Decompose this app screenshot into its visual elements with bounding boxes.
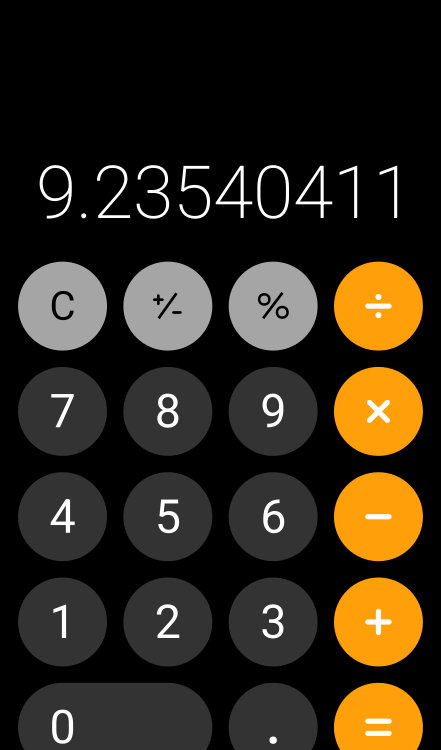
staticText: 8 xyxy=(155,384,181,439)
button[interactable]: 9 xyxy=(229,367,318,456)
button[interactable]: Equals xyxy=(334,683,423,750)
button[interactable]: 8 xyxy=(123,367,212,456)
button[interactable]: 1 xyxy=(18,577,107,666)
button[interactable]: C xyxy=(18,262,107,351)
staticText: 3 xyxy=(260,595,286,649)
staticText: 1 xyxy=(50,595,76,649)
staticText: 0 xyxy=(49,700,75,750)
staticText: 7 xyxy=(50,384,76,439)
staticText: C xyxy=(50,283,76,330)
staticText: 2 xyxy=(155,595,181,649)
button[interactable]: Divide xyxy=(334,262,423,351)
button[interactable]: 4 xyxy=(18,472,107,561)
button[interactable]: 6 xyxy=(229,472,318,561)
button[interactable]: 0 xyxy=(18,683,212,750)
button[interactable]: Percent xyxy=(229,262,318,351)
staticText: 9.23540411 xyxy=(36,150,413,236)
button[interactable]: Decimal point xyxy=(229,683,318,750)
button[interactable]: Subtract xyxy=(334,472,423,561)
button[interactable]: Multiply xyxy=(334,367,423,456)
button[interactable]: 2 xyxy=(123,577,212,666)
staticText: 4 xyxy=(50,489,76,544)
staticText: 6 xyxy=(260,489,286,544)
button[interactable]: 5 xyxy=(123,472,212,561)
button[interactable]: 3 xyxy=(229,577,318,666)
staticText: 9 xyxy=(260,384,286,439)
staticText: 5 xyxy=(155,489,181,544)
button[interactable]: Plus or minus xyxy=(123,262,212,351)
button[interactable]: Add xyxy=(334,577,423,666)
button[interactable]: 7 xyxy=(18,367,107,456)
